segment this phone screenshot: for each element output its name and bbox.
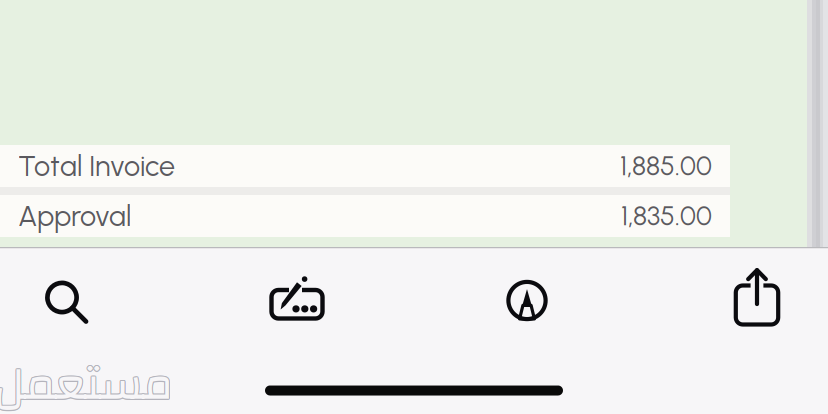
staticText: مستعمل [0,341,173,414]
button[interactable]: Search [10,253,122,349]
staticText: مستعمل [0,343,172,414]
staticText: مستعمل [0,342,172,414]
staticText: مستعمل [0,342,172,414]
staticText: Total Invoice [18,149,175,183]
button[interactable]: Markup [241,252,353,348]
staticText: مستعمل [0,342,173,414]
button[interactable]: Draw [471,252,583,348]
button[interactable]: Share [701,252,813,348]
staticText: مستعمل [0,340,172,414]
staticText: 1,835.00 [621,200,712,232]
staticText: مستعمل [0,342,174,414]
staticText: 1,885.00 [620,150,712,182]
staticText: مستعمل [0,341,172,414]
staticText: Approval [18,199,131,233]
staticText: مستعمل [0,342,171,414]
